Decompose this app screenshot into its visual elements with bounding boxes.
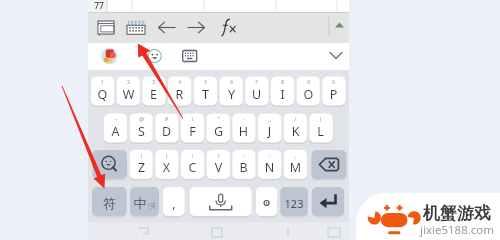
staticText: 0 — [322, 78, 345, 240]
staticText: G — [207, 123, 230, 240]
staticText: A — [104, 123, 127, 240]
button[interactable] — [232, 150, 255, 179]
button[interactable]: Search — [93, 150, 128, 179]
staticText: V — [207, 159, 230, 240]
staticText: L — [309, 123, 332, 240]
button[interactable] — [207, 150, 230, 179]
button[interactable]: Hide — [324, 44, 348, 68]
staticText: ~ — [104, 115, 127, 240]
staticText: N — [258, 159, 281, 240]
staticText: 8 — [271, 78, 294, 240]
staticText: S — [130, 123, 153, 240]
staticText: 123 — [280, 196, 308, 240]
button[interactable]: Profile — [98, 44, 120, 68]
staticText: # — [155, 115, 178, 240]
button[interactable] — [92, 187, 127, 216]
button[interactable] — [309, 114, 332, 143]
staticText: 4 — [168, 78, 191, 240]
staticText: , — [163, 194, 185, 240]
staticText: U — [245, 86, 268, 240]
staticText: @ — [130, 115, 153, 240]
button[interactable]: Back — [160, 15, 182, 38]
staticText: 2 — [117, 78, 140, 240]
staticText: ) — [155, 152, 178, 240]
staticText: _ — [258, 115, 281, 240]
button[interactable] — [163, 187, 185, 216]
staticText: ; — [258, 152, 281, 240]
button[interactable] — [258, 114, 281, 143]
button[interactable] — [280, 187, 308, 216]
button[interactable] — [168, 77, 191, 106]
button[interactable] — [322, 77, 345, 106]
button[interactable] — [181, 114, 204, 143]
staticText: ? — [207, 152, 230, 240]
button[interactable]: Keyboard — [166, 44, 188, 68]
staticText: Z — [130, 159, 153, 240]
button[interactable] — [155, 150, 178, 179]
staticText: 6 — [220, 78, 243, 240]
button[interactable] — [130, 187, 159, 216]
button[interactable]: Screen view — [95, 15, 117, 38]
button[interactable]: Emoji — [132, 44, 154, 68]
staticText: D — [155, 123, 178, 240]
staticText: " — [207, 115, 230, 240]
staticText: / — [284, 115, 307, 240]
button[interactable] — [91, 77, 114, 106]
button[interactable] — [104, 114, 127, 143]
staticText: I — [271, 86, 294, 240]
staticText: K — [284, 123, 307, 240]
staticText: : — [232, 152, 255, 240]
staticText: C — [181, 159, 204, 240]
button[interactable] — [258, 150, 281, 179]
button[interactable]: Formula — [222, 15, 244, 38]
button[interactable] — [142, 77, 165, 106]
staticText: 3 — [142, 78, 165, 240]
button[interactable]: Collapse — [330, 15, 350, 38]
staticText: W — [117, 86, 140, 240]
staticText: O — [297, 86, 320, 240]
button[interactable] — [181, 150, 204, 179]
staticText: 符 — [92, 195, 127, 240]
button[interactable] — [155, 114, 178, 143]
staticText: jixie5188.com — [419, 222, 495, 240]
staticText: 中 — [129, 195, 151, 240]
staticText: 1 — [91, 78, 114, 240]
button[interactable] — [220, 77, 243, 106]
staticText: , — [284, 152, 307, 240]
staticText: 机蟹游戏 — [419, 203, 495, 240]
button[interactable] — [245, 77, 268, 106]
staticText: /英 — [144, 201, 160, 240]
staticText: T — [194, 86, 217, 240]
staticText: F — [181, 123, 204, 240]
staticText: H — [232, 123, 255, 240]
button[interactable]: Enter — [312, 187, 344, 216]
staticText: Y — [220, 86, 243, 240]
staticText: 9 — [297, 78, 320, 240]
staticText: R — [168, 86, 191, 240]
button[interactable] — [194, 77, 217, 106]
button[interactable] — [297, 77, 320, 106]
button[interactable] — [256, 187, 277, 216]
button[interactable] — [117, 77, 140, 106]
button[interactable]: Backspace — [312, 150, 347, 179]
staticText: ! — [181, 152, 204, 240]
button[interactable] — [271, 77, 294, 106]
staticText: E — [142, 86, 165, 240]
staticText: 5 — [194, 78, 217, 240]
staticText: X — [155, 159, 178, 240]
button[interactable]: Forward — [190, 15, 212, 38]
staticText: 77 — [90, 0, 108, 240]
button[interactable] — [130, 150, 153, 179]
button[interactable] — [284, 150, 307, 179]
staticText: Q — [91, 86, 114, 240]
staticText: P — [322, 86, 345, 240]
button[interactable] — [207, 114, 230, 143]
button[interactable] — [232, 114, 255, 143]
button[interactable] — [284, 114, 307, 143]
button[interactable]: Space — [190, 187, 252, 216]
staticText: | — [309, 115, 332, 240]
button[interactable]: Input method — [126, 15, 148, 38]
button[interactable] — [130, 114, 153, 143]
staticText: \ — [181, 115, 204, 240]
staticText: B — [232, 159, 255, 240]
